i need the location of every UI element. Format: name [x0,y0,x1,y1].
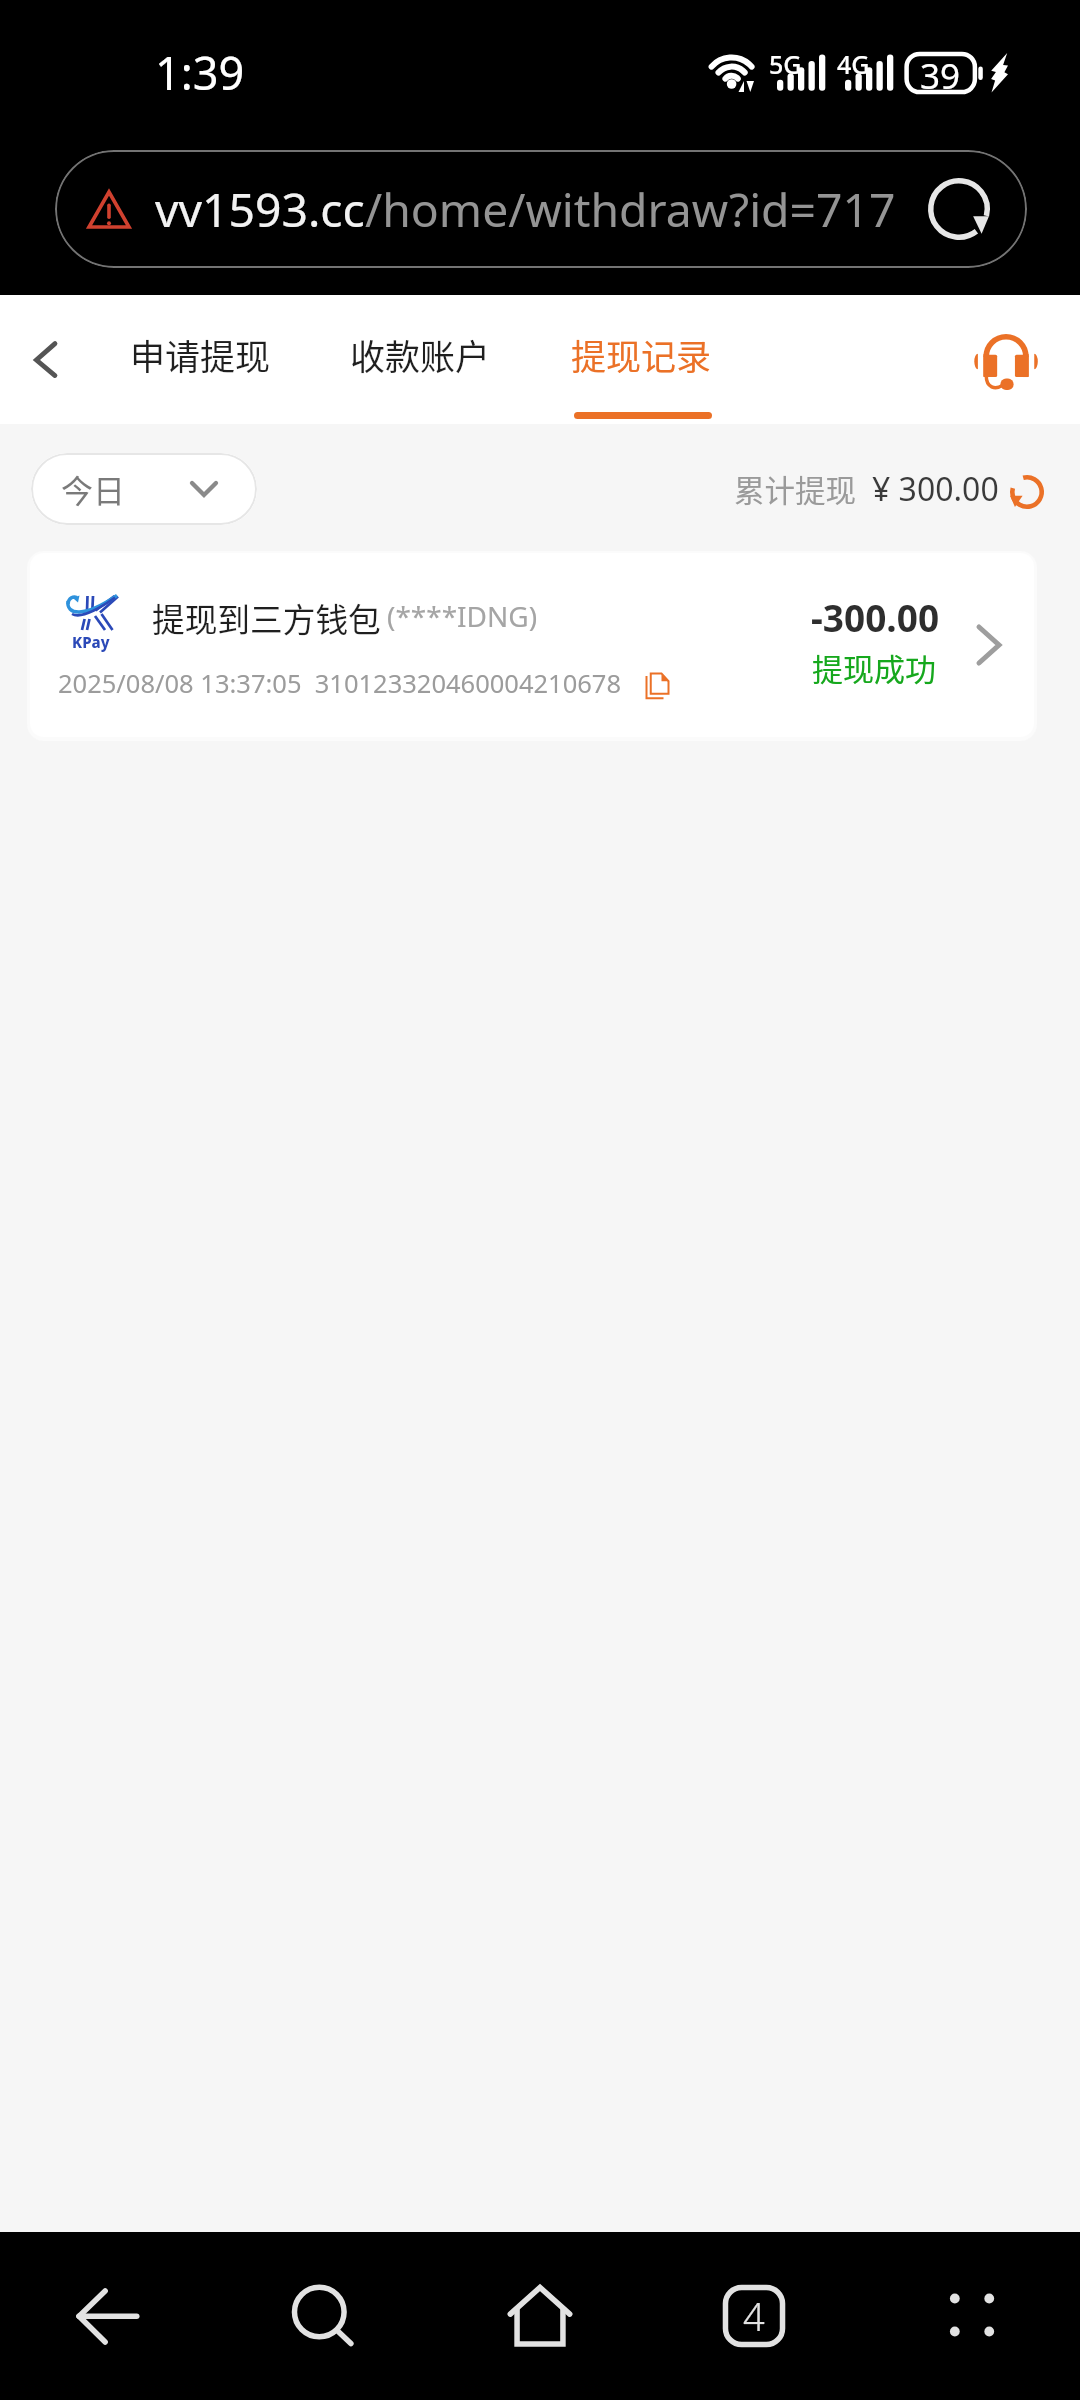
button[interactable]: Home [480,2256,600,2376]
staticText: KPay [72,632,110,652]
button[interactable]: 今日 [31,453,257,525]
staticText: 收款账户 [350,329,490,380]
staticText: 4G [837,47,870,81]
button[interactable]: vv1593.cc [55,150,1027,268]
button[interactable]: Copy [631,660,683,712]
button[interactable]: 收款账户 [350,295,490,424]
button[interactable]: Tabs: 4 open [694,2256,814,2376]
button[interactable]: Refresh [1007,472,1047,512]
staticText: 提现成功 [812,645,936,690]
button[interactable]: 提现记录 [571,295,711,424]
staticText: 提现记录 [571,329,711,380]
button[interactable]: Back [47,2256,167,2376]
staticText: (****IDNG) [387,597,538,635]
staticText: 申请提现 [130,329,270,380]
staticText: /home/withdraw?id=717 [365,178,896,241]
staticText: 累计提现 [734,467,856,511]
button[interactable]: Customer service [956,312,1056,412]
staticText: 提现到三方钱包 [152,594,381,641]
staticText: 今日 [61,466,126,512]
staticText: -300.00 [811,592,940,642]
staticText: ¥ 300.00 [872,467,999,511]
staticText: 1:39 [155,42,245,103]
staticText: 4 [743,2290,765,2342]
button[interactable]: 申请提现 [130,295,270,424]
staticText: 39 [920,52,961,100]
button[interactable]: Reload [928,178,990,240]
staticText: 5G [769,47,802,81]
button[interactable]: Back [10,314,96,400]
button[interactable]: KPay [30,553,1034,737]
button[interactable]: Search [263,2256,383,2376]
staticText: vv1593.cc [155,178,365,241]
staticText: 2025/08/08 13:37:05 31012332046000421067… [58,666,622,701]
button[interactable]: More [911,2256,1031,2376]
